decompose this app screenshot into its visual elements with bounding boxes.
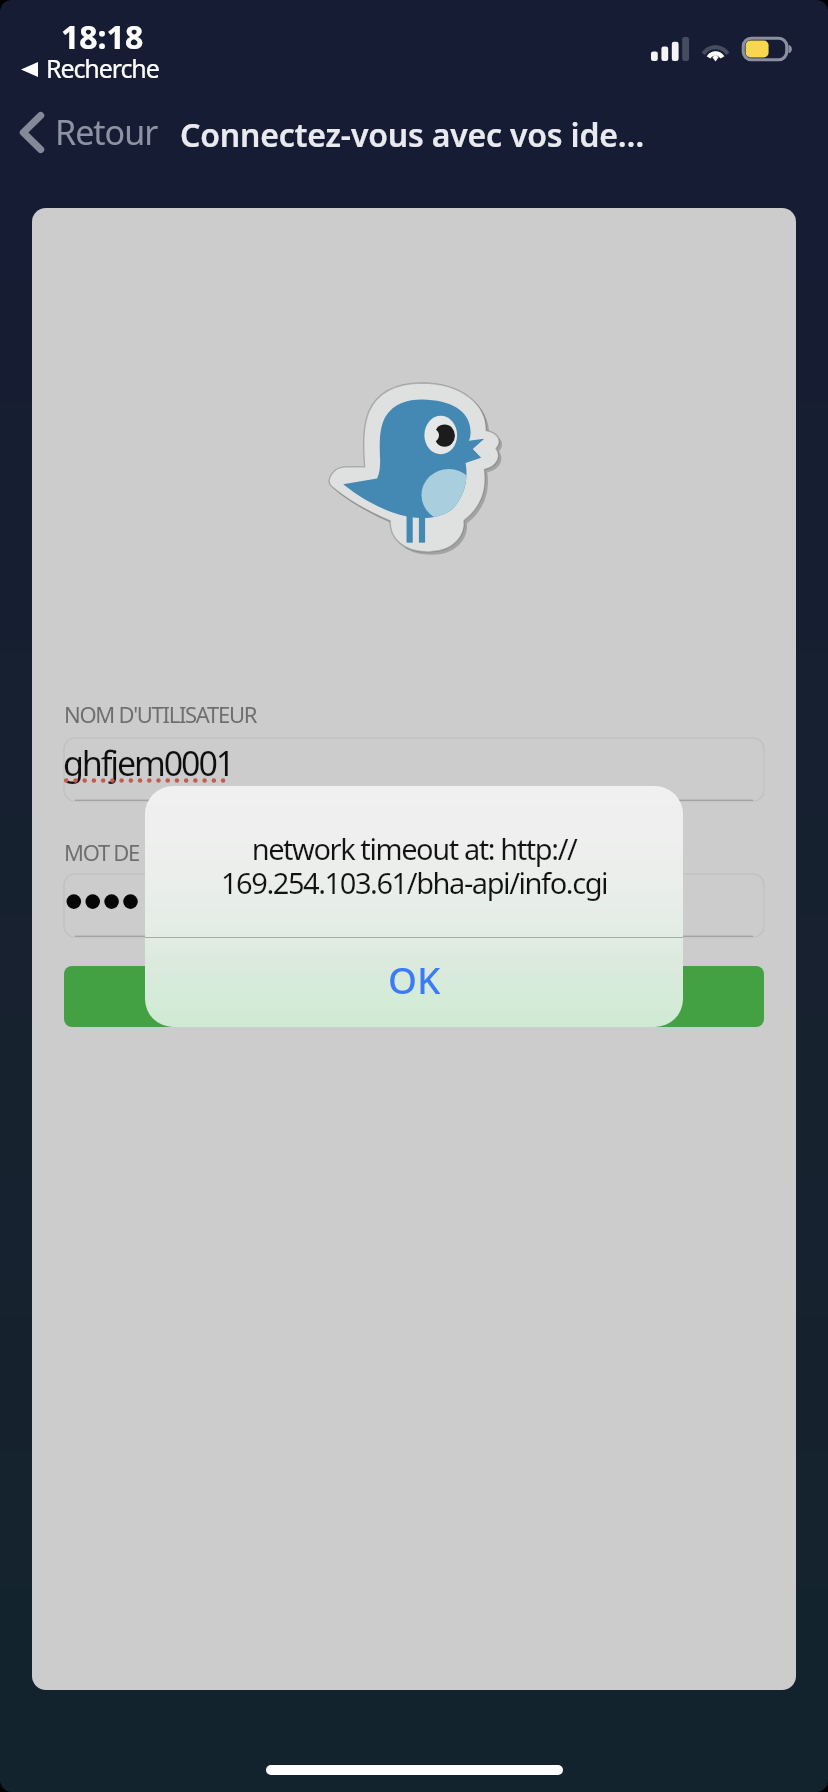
- button[interactable]: OK: [145, 934, 683, 1023]
- staticText: ghfjem0001: [63, 740, 234, 786]
- staticText: MOT DE PASSE: [64, 837, 200, 867]
- staticText: Retour: [55, 109, 158, 155]
- button[interactable]: Retour: [0, 101, 168, 163]
- staticText: network timeout at: http:// 169.254.103.…: [145, 829, 683, 902]
- button[interactable]: [64, 966, 764, 1027]
- staticText: NOM D'UTILISATEUR: [64, 699, 257, 729]
- staticText: Connectez-vous avec vos ide…: [180, 113, 645, 157]
- staticText: 18:18: [61, 15, 144, 59]
- staticText: Recherche: [46, 51, 159, 85]
- staticText: OK: [388, 954, 441, 1004]
